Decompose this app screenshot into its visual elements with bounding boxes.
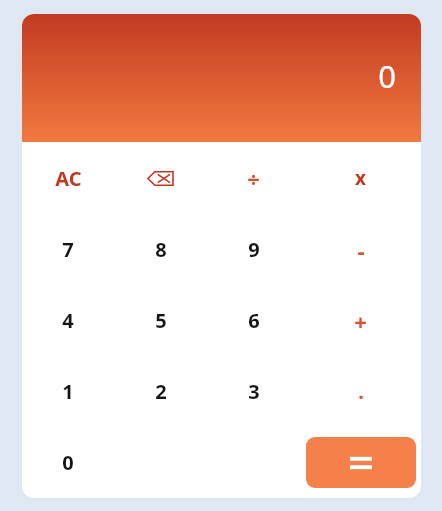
staticText: 4 — [62, 307, 74, 334]
button[interactable]: . — [300, 356, 421, 427]
button[interactable]: Backspace — [114, 142, 207, 214]
staticText: - — [357, 235, 365, 265]
staticText: 9 — [248, 236, 260, 263]
button[interactable]: x — [300, 142, 421, 214]
button[interactable]: AC — [22, 142, 114, 214]
staticText: 8 — [155, 236, 167, 263]
staticText: 1 — [62, 378, 74, 405]
staticText: . — [358, 378, 364, 405]
button[interactable]: 8 — [114, 214, 207, 285]
staticText: 3 — [248, 378, 260, 405]
staticText: 2 — [155, 378, 167, 405]
staticText: 0 — [62, 449, 74, 476]
staticText: x — [355, 165, 366, 191]
staticText: 5 — [155, 307, 167, 334]
staticText: AC — [55, 165, 82, 192]
button[interactable]: - — [300, 214, 421, 285]
staticText: 7 — [62, 236, 74, 263]
button[interactable]: 9 — [207, 214, 300, 285]
button[interactable]: Equals — [306, 437, 416, 488]
button[interactable]: 2 — [114, 356, 207, 427]
button[interactable]: 7 — [22, 214, 114, 285]
button[interactable]: 5 — [114, 285, 207, 356]
button[interactable]: 6 — [207, 285, 300, 356]
staticText: 6 — [248, 307, 260, 334]
button[interactable]: 0 — [22, 427, 114, 498]
button[interactable]: 1 — [22, 356, 114, 427]
staticText: 0 — [378, 55, 396, 97]
button[interactable]: ÷ — [207, 142, 300, 214]
staticText: ÷ — [247, 163, 260, 193]
button[interactable]: + — [300, 285, 421, 356]
button[interactable]: 3 — [207, 356, 300, 427]
button[interactable]: 4 — [22, 285, 114, 356]
staticText: + — [354, 306, 367, 336]
